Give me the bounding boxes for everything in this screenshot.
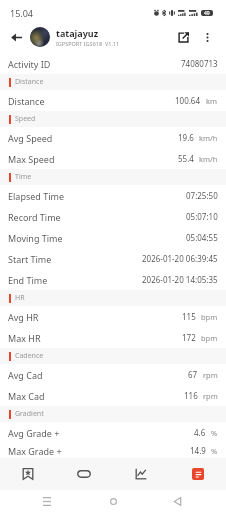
staticText: km/h bbox=[199, 133, 218, 143]
staticText: Max Speed bbox=[8, 153, 55, 165]
button[interactable]: Avg Cad bbox=[0, 364, 226, 385]
button[interactable]: Max Grade + bbox=[0, 443, 226, 458]
button[interactable]: Max Cad bbox=[0, 385, 226, 406]
staticText: rpm bbox=[203, 391, 218, 401]
staticText: Distance bbox=[15, 77, 44, 87]
staticText: tatajayuz bbox=[56, 27, 99, 39]
staticText: 19.6 bbox=[178, 132, 194, 143]
button[interactable]: Activity details bbox=[169, 458, 226, 490]
button[interactable]: Avg Speed bbox=[0, 127, 226, 148]
staticText: Gradient bbox=[15, 409, 44, 419]
staticText: 49 bbox=[204, 10, 210, 16]
staticText: 05:07:10 bbox=[186, 211, 218, 222]
staticText: 100.64 bbox=[175, 95, 201, 106]
button[interactable]: Recent apps bbox=[41, 495, 53, 507]
staticText: Max Grade + bbox=[8, 445, 62, 457]
button[interactable]: Back bbox=[7, 28, 26, 47]
button[interactable]: Share bbox=[171, 25, 195, 49]
button[interactable]: Back bbox=[171, 495, 183, 507]
button[interactable]: Statistics bbox=[112, 458, 169, 490]
staticText: Avg Cad bbox=[8, 369, 43, 381]
staticText: bpm bbox=[201, 312, 218, 322]
button[interactable]: Elapsed Time bbox=[0, 185, 226, 206]
staticText: Time bbox=[15, 172, 32, 182]
staticText: Max HR bbox=[8, 332, 41, 344]
button[interactable]: Moving Time bbox=[0, 227, 226, 248]
button[interactable]: Home bbox=[107, 495, 119, 507]
button[interactable]: Max Speed bbox=[0, 148, 226, 169]
staticText: 15.04 bbox=[10, 7, 34, 19]
button[interactable]: Max HR bbox=[0, 327, 226, 348]
staticText: 55.4 bbox=[178, 153, 194, 164]
button[interactable]: Avg HR bbox=[0, 306, 226, 327]
button[interactable]: End Time bbox=[0, 269, 226, 290]
staticText: 05:04:55 bbox=[186, 232, 218, 243]
staticText: Avg HR bbox=[8, 311, 39, 323]
staticText: 14.9 bbox=[190, 445, 206, 456]
staticText: 115 bbox=[182, 311, 196, 322]
staticText: 2026-01-20 06:39:45 bbox=[142, 253, 218, 264]
staticText: Elapsed Time bbox=[8, 190, 64, 202]
staticText: Max Cad bbox=[8, 390, 45, 402]
button[interactable]: Record Time bbox=[0, 206, 226, 227]
button[interactable]: Saved bbox=[0, 458, 56, 490]
staticText: Start Time bbox=[8, 253, 52, 265]
staticText: % bbox=[211, 428, 218, 438]
staticText: 2026-01-20 14:05:35 bbox=[142, 274, 218, 285]
staticText: Activity ID bbox=[8, 58, 51, 70]
staticText: 4.6 bbox=[194, 427, 206, 438]
staticText: 67 bbox=[188, 369, 198, 380]
button[interactable]: More options bbox=[197, 27, 217, 47]
staticText: Distance bbox=[8, 95, 45, 107]
staticText: bpm bbox=[201, 333, 218, 343]
staticText: Moving Time bbox=[8, 232, 63, 244]
staticText: Avg Speed bbox=[8, 132, 53, 144]
button[interactable]: Start Time bbox=[0, 248, 226, 269]
staticText: km/h bbox=[199, 154, 218, 164]
staticText: End Time bbox=[8, 274, 48, 286]
staticText: 07:25:50 bbox=[186, 190, 218, 201]
staticText: 74080713 bbox=[181, 58, 218, 69]
staticText: km bbox=[206, 96, 218, 106]
staticText: Record Time bbox=[8, 211, 61, 223]
staticText: Avg Grade + bbox=[8, 427, 60, 439]
staticText: rpm bbox=[203, 370, 218, 380]
staticText: HR bbox=[15, 293, 25, 303]
button[interactable]: Distance bbox=[0, 90, 226, 111]
staticText: Speed bbox=[15, 114, 36, 124]
button[interactable]: Avg Grade + bbox=[0, 422, 226, 443]
staticText: % bbox=[211, 446, 218, 456]
button[interactable]: Devices bbox=[56, 458, 112, 490]
staticText: 116 bbox=[184, 390, 198, 401]
staticText: Cadence bbox=[15, 351, 44, 361]
staticText: 172 bbox=[182, 332, 196, 343]
staticText: IGPSPORT IGS618 V1.11 bbox=[56, 40, 120, 47]
button[interactable]: Activity ID bbox=[0, 53, 226, 74]
